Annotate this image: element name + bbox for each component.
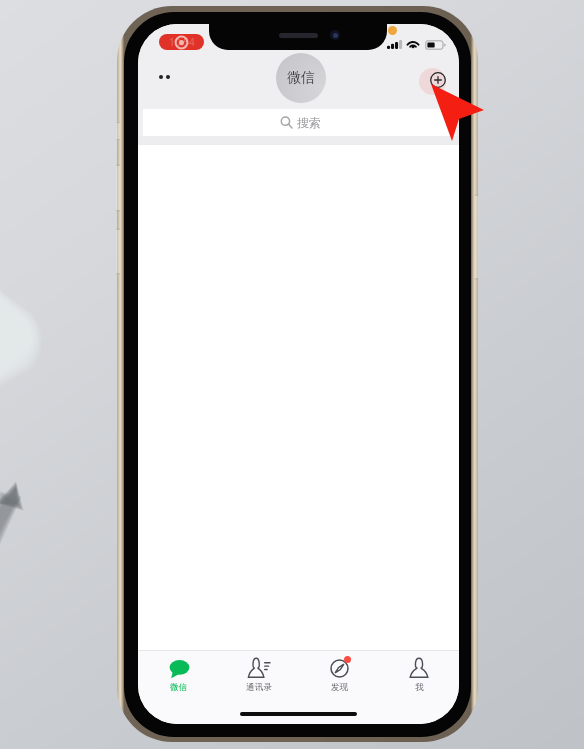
- staticText: 通讯录: [246, 682, 272, 693]
- staticText: 搜索: [297, 115, 321, 130]
- button[interactable]: 微信: [276, 53, 326, 103]
- button[interactable]: 发现: [299, 651, 379, 701]
- staticText: 10:54: [169, 35, 195, 49]
- button[interactable]: 微信: [138, 651, 219, 701]
- button[interactable]: 搜索: [143, 109, 454, 136]
- button[interactable]: 通讯录: [219, 651, 299, 701]
- button[interactable]: Add: [424, 66, 452, 94]
- staticText: 微信: [287, 69, 315, 87]
- staticText: 微信: [170, 682, 187, 693]
- button[interactable]: More: [150, 66, 180, 88]
- button[interactable]: 我: [379, 651, 459, 701]
- staticText: 发现: [331, 682, 348, 693]
- staticText: 我: [415, 682, 424, 693]
